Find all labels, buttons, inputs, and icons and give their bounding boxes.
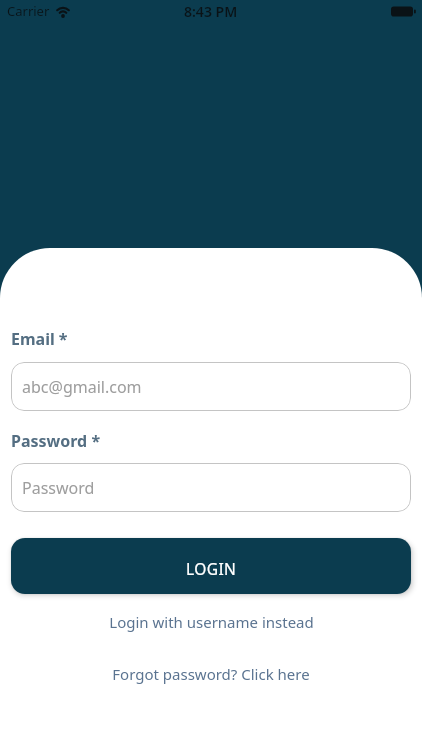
staticText: Forgot password? Click here <box>112 664 310 684</box>
staticText: Password * <box>11 430 101 452</box>
staticText: 8:43 PM <box>184 2 238 21</box>
button[interactable]: LOGIN <box>11 538 411 594</box>
staticText: Login with username instead <box>109 612 314 632</box>
button[interactable]: abc@gmail.com <box>11 362 411 411</box>
staticText: Password <box>22 477 95 499</box>
staticText: Email * <box>11 328 68 350</box>
button[interactable]: Forgot password? Click here <box>11 664 411 684</box>
button[interactable]: Password <box>11 463 411 512</box>
button[interactable]: Login with username instead <box>11 612 411 632</box>
staticText: LOGIN <box>186 558 237 579</box>
staticText: abc@gmail.com <box>22 376 142 398</box>
staticText: Carrier <box>7 2 50 20</box>
